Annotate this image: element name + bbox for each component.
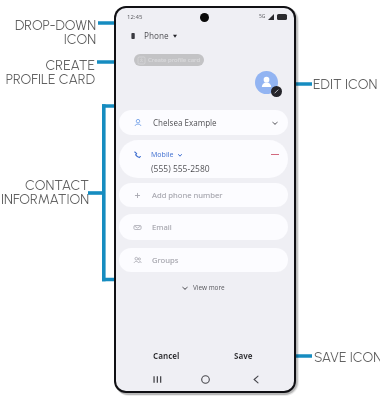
button[interactable]: Edit profile photo	[255, 71, 278, 94]
button[interactable]: Email	[119, 214, 288, 240]
staticText: EDIT ICON	[313, 76, 380, 93]
button[interactable]: Cancel	[140, 347, 192, 363]
staticText: View more	[193, 283, 225, 292]
staticText: Add phone number	[152, 190, 223, 200]
button[interactable]: Back	[250, 374, 260, 384]
button[interactable]: Phone	[129, 29, 177, 42]
staticText: Cancel	[153, 350, 180, 361]
staticText: Mobile	[151, 150, 174, 160]
button[interactable]: View more	[181, 282, 225, 293]
staticText: Save	[234, 350, 253, 361]
staticText: CONTACT INFORMATION	[0, 177, 89, 208]
button[interactable]: Save	[219, 347, 267, 363]
staticText: Chelsea Example	[153, 117, 217, 128]
staticText: 5G	[259, 13, 266, 20]
staticText: Groups	[152, 255, 179, 265]
button[interactable]: Home	[200, 374, 210, 384]
staticText: Email	[152, 222, 172, 232]
button[interactable]: Create profile card	[134, 54, 204, 66]
button[interactable]: Chelsea Example	[119, 110, 288, 135]
button[interactable]: Recents	[151, 374, 161, 384]
staticText: Phone	[144, 30, 169, 41]
button[interactable]: Mobile	[119, 140, 288, 178]
staticText: SAVE ICON	[314, 349, 380, 366]
staticText: DROP-DOWN ICON	[5, 17, 96, 48]
button[interactable]: Add phone number	[119, 183, 288, 207]
staticText: CREATE PROFILE CARD	[0, 57, 95, 88]
staticText: 12:45	[127, 13, 143, 21]
staticText: (555) 555-2580	[151, 163, 210, 175]
button[interactable]: Groups	[119, 248, 288, 272]
staticText: Create profile card	[148, 56, 201, 64]
